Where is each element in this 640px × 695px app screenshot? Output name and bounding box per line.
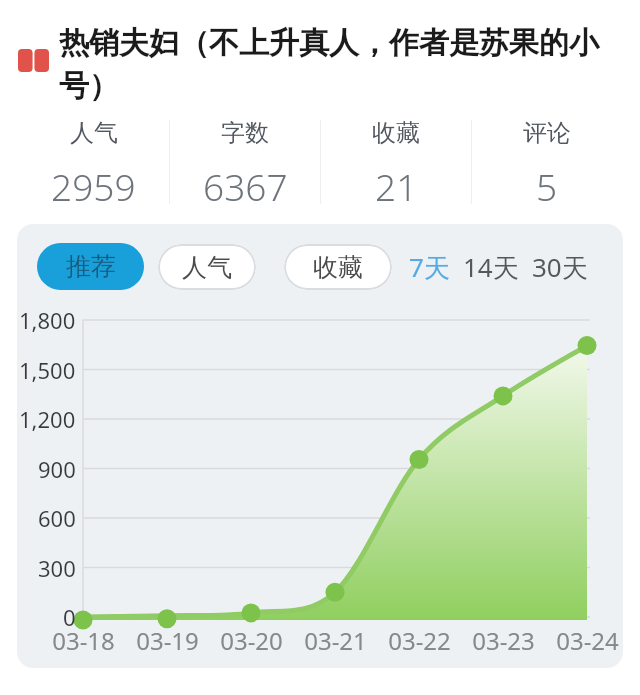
staticText: 评论 (523, 118, 571, 148)
button[interactable]: 推荐 (37, 243, 144, 290)
staticText: 字数 (221, 118, 269, 148)
button[interactable]: 评论 (472, 118, 622, 206)
staticText: 收藏 (313, 252, 363, 283)
staticText: 30天 (532, 249, 588, 285)
staticText: 7天 (409, 249, 450, 285)
button[interactable]: 热销夫妇（不上升真人，作者是苏果的小号） (18, 24, 632, 105)
staticText: 300 (38, 553, 76, 583)
staticText: 03-19 (136, 624, 199, 657)
staticText: 1,800 (19, 305, 76, 335)
staticText: 03-18 (52, 624, 115, 657)
staticText: 5 (536, 161, 558, 206)
staticText: 热销夫妇（不上升真人，作者是苏果的小号） (59, 24, 632, 105)
staticText: 1,200 (19, 404, 76, 434)
button[interactable]: 收藏 (321, 118, 471, 206)
staticText: 03-24 (556, 624, 619, 657)
button[interactable]: 人气 (158, 244, 256, 290)
staticText: 推荐 (66, 251, 116, 282)
staticText: 03-23 (472, 624, 535, 657)
button[interactable]: 14天 (461, 247, 521, 287)
staticText: 2959 (51, 161, 136, 206)
staticText: 6367 (203, 161, 288, 206)
staticText: 人气 (70, 118, 118, 148)
button[interactable]: 7天 (407, 247, 452, 287)
button[interactable]: 30天 (530, 247, 590, 287)
staticText: 0 (63, 602, 76, 632)
staticText: 21 (375, 161, 418, 206)
staticText: 03-22 (388, 624, 451, 657)
staticText: 收藏 (372, 118, 420, 148)
staticText: 900 (38, 454, 76, 484)
button[interactable]: 人气 (18, 118, 169, 206)
staticText: 600 (38, 503, 76, 533)
button[interactable]: 字数 (170, 118, 320, 206)
staticText: 人气 (182, 252, 232, 283)
staticText: 14天 (463, 249, 519, 285)
staticText: 03-20 (220, 624, 283, 657)
staticText: 03-21 (304, 624, 367, 657)
button[interactable]: 收藏 (284, 244, 392, 290)
staticText: 1,500 (19, 355, 76, 385)
